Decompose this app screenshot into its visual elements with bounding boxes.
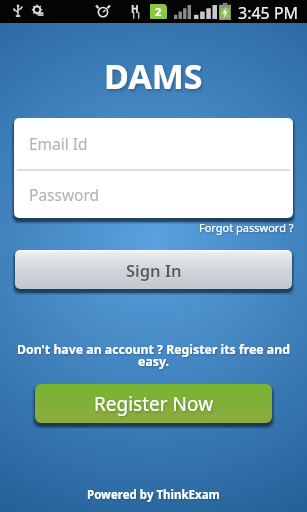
button[interactable]: Email Id [14,118,293,169]
staticText: DAMS [104,53,203,93]
staticText: Password [29,184,100,205]
button[interactable]: Register Now [35,384,272,423]
button[interactable]: Forgot password ? [199,220,294,235]
staticText: H [131,2,139,16]
staticText: Forgot password ? [199,220,294,235]
button[interactable]: Sign In [15,250,292,289]
button[interactable]: Password [14,171,293,218]
staticText: Email Id [29,133,88,154]
staticText: Sign In [126,259,182,281]
staticText: 2 [155,4,162,19]
staticText: Powered by ThinkExam [87,487,220,503]
staticText: easy. [15,353,292,370]
staticText: Don't have an account ? Register its fre… [15,341,292,358]
staticText: Register Now [94,391,214,417]
staticText: 3:45 PM [238,2,299,24]
